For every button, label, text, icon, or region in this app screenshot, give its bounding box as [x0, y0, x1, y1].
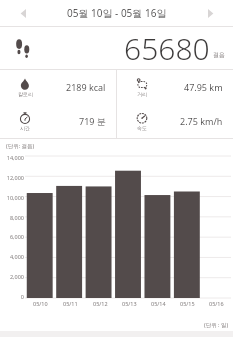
staticText: 2,000 — [9, 273, 24, 280]
staticText: 05/15 — [180, 300, 195, 307]
button[interactable]: Next week — [187, 0, 233, 26]
staticText: 걸음 — [213, 51, 225, 59]
staticText: 8,000 — [9, 214, 24, 221]
staticText: 05월 10일 - 05월 16일 — [67, 6, 167, 20]
button[interactable]: Previous week — [0, 0, 46, 26]
staticText: 719 분 — [79, 115, 106, 127]
staticText: 05/13 — [122, 300, 137, 307]
staticText: 14,000 — [6, 154, 24, 161]
staticText: 10,000 — [6, 194, 24, 201]
staticText: 칼로리 — [18, 91, 33, 97]
staticText: 05/11 — [63, 300, 78, 307]
button[interactable]: 속도 — [117, 104, 233, 138]
staticText: 12,000 — [6, 174, 24, 181]
staticText: 65680 — [124, 28, 210, 69]
staticText: 0 — [20, 293, 24, 300]
button[interactable]: 65680 — [0, 27, 233, 69]
staticText: 거리 — [137, 91, 147, 97]
staticText: 2.75 km/h — [180, 115, 223, 127]
staticText: 05/14 — [151, 300, 166, 307]
staticText: 47.95 km — [184, 81, 223, 93]
staticText: (단위 : 일) — [204, 321, 229, 329]
staticText: 시간 — [20, 125, 30, 131]
button[interactable]: 시간 — [0, 104, 116, 138]
staticText: 6,000 — [9, 233, 24, 240]
staticText: 2189 kcal — [66, 81, 106, 93]
staticText: 05/10 — [33, 300, 48, 307]
button[interactable]: 거리 — [117, 70, 233, 104]
button[interactable]: 칼로리 — [0, 70, 116, 104]
staticText: (단위: 걸음) — [6, 142, 35, 150]
staticText: 05/12 — [93, 300, 108, 307]
staticText: 05/16 — [209, 300, 224, 307]
staticText: 속도 — [137, 125, 147, 131]
staticText: 4,000 — [9, 253, 24, 260]
